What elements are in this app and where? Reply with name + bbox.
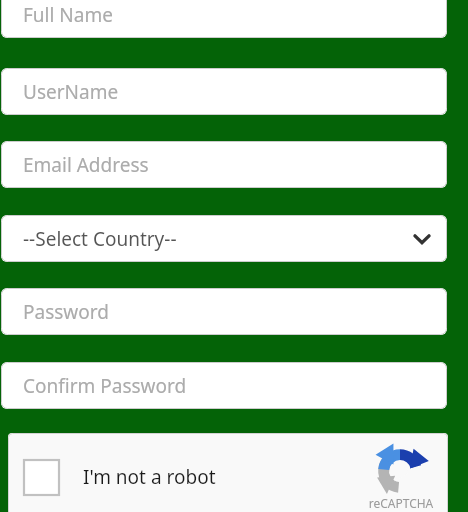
button[interactable]: Password [1, 288, 447, 335]
button[interactable]: I'm not a robot [23, 455, 253, 499]
other: Open country dropdown [409, 226, 435, 252]
staticText: Confirm Password [23, 373, 187, 399]
other: reCAPTCHA [374, 445, 426, 497]
staticText: UserName [23, 79, 119, 105]
button[interactable]: Full Name [1, 0, 447, 38]
button[interactable]: Confirm Password [1, 362, 447, 409]
staticText: I'm not a robot [83, 464, 216, 490]
staticText: Full Name [23, 2, 113, 28]
staticText: Email Address [23, 152, 149, 178]
button[interactable]: --Select Country-- [1, 215, 447, 262]
button[interactable]: UserName [1, 68, 447, 115]
staticText: Password [23, 299, 109, 325]
staticText: reCAPTCHA [360, 495, 442, 512]
staticText: --Select Country-- [23, 226, 177, 252]
button[interactable]: Email Address [1, 141, 447, 188]
